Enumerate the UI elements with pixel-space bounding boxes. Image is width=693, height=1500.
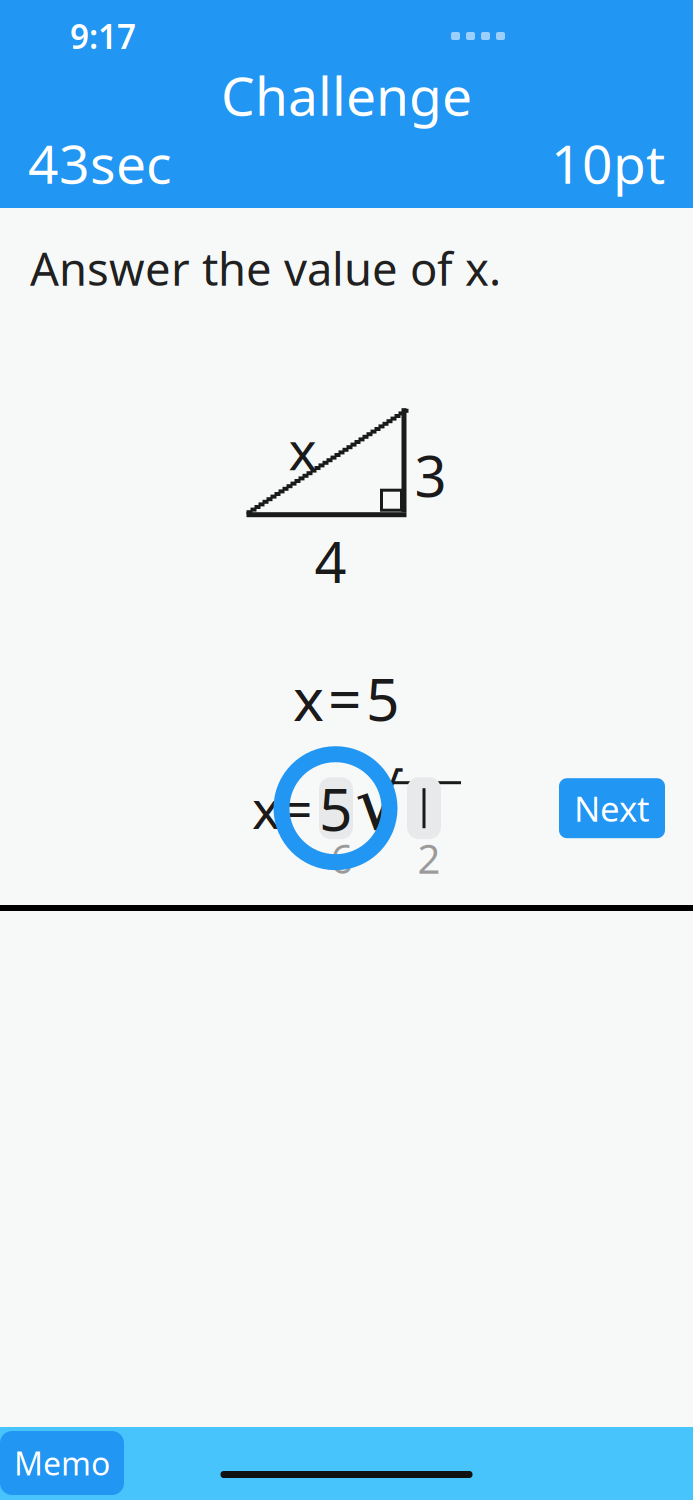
button[interactable]: Memo [0,1431,124,1495]
staticText: x [293,659,324,737]
staticText: 10pt [551,128,665,198]
staticText: 5 [319,769,353,847]
staticText: Answer the value of x. [30,238,501,298]
staticText: = [282,773,313,844]
button[interactable]: Next [559,778,665,838]
staticText: 2 [417,832,440,885]
staticText: x [288,414,316,485]
staticText: x [252,773,280,844]
staticText: 6 [330,832,353,885]
staticText: Next [574,785,650,831]
staticText: 9:17 [70,14,136,58]
staticText: Challenge [221,60,472,130]
staticText: = [328,659,362,737]
staticText: √ [355,760,403,845]
staticText: 3 [414,438,446,513]
staticText: Memo [14,1442,110,1484]
staticText: 5 [366,659,400,737]
staticText: 4 [314,524,346,599]
staticText: + [312,740,326,772]
staticText: 43sec [28,128,172,198]
